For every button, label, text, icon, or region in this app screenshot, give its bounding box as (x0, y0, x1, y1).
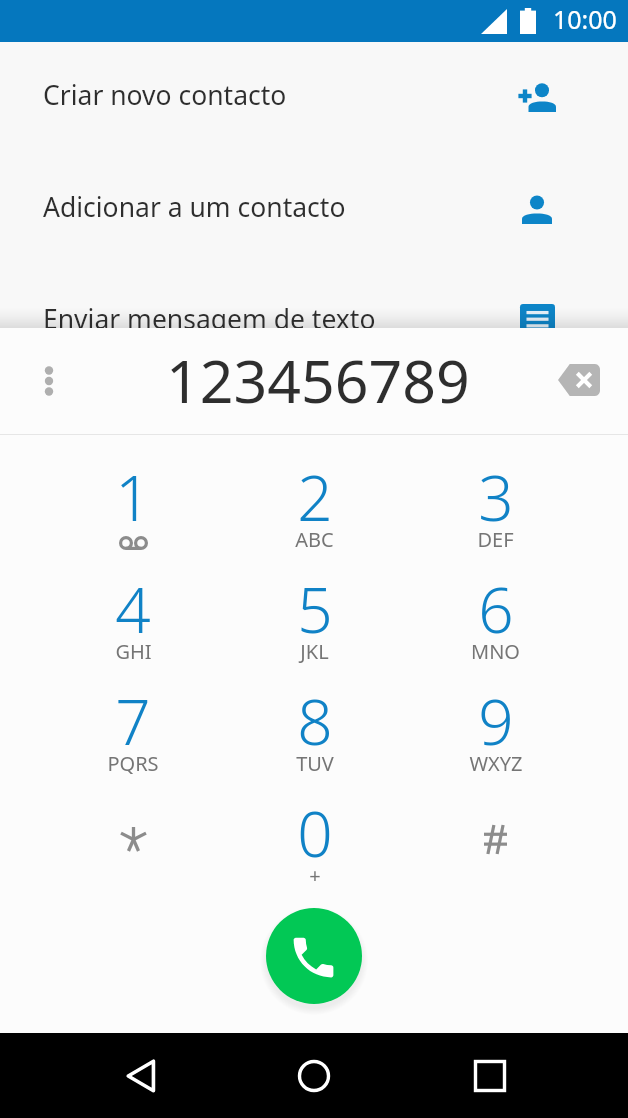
button[interactable] (42, 791, 224, 903)
staticText: 6 (478, 567, 514, 651)
staticText: 2 (297, 455, 333, 539)
staticText: 3 (478, 455, 514, 539)
button[interactable] (405, 791, 586, 903)
staticText: Criar novo contacto (43, 77, 287, 113)
staticText: 4 (115, 567, 151, 651)
staticText: Enviar mensagem de texto (43, 301, 376, 337)
staticText: 0 (297, 791, 333, 875)
staticText: 7 (115, 679, 151, 763)
button[interactable]: Recents (450, 1033, 530, 1118)
staticText: PQRS (107, 750, 159, 777)
button[interactable]: Home (274, 1033, 354, 1118)
button[interactable]: 1 (42, 455, 224, 567)
button[interactable]: Back (103, 1033, 183, 1118)
button[interactable]: Enviar mensagem de texto (0, 263, 628, 375)
staticText: ABC (295, 526, 334, 553)
staticText: 5 (297, 567, 333, 651)
staticText: 10:00 (553, 2, 617, 36)
button[interactable]: Adicionar a um contacto (0, 151, 628, 263)
staticText: WXYZ (469, 750, 523, 777)
staticText: 1 (115, 455, 151, 539)
button[interactable]: 2 (224, 455, 405, 567)
button[interactable]: 7 (42, 679, 224, 791)
staticText: DEF (477, 526, 514, 553)
button[interactable]: 6 (405, 567, 586, 679)
button[interactable]: Call (266, 908, 362, 1004)
button[interactable]: 5 (224, 567, 405, 679)
staticText: Adicionar a um contacto (43, 189, 346, 225)
staticText: GHI (115, 638, 152, 665)
staticText: TUV (296, 750, 334, 777)
staticText: + (309, 862, 321, 889)
button[interactable]: 8 (224, 679, 405, 791)
button[interactable]: Criar novo contacto (0, 39, 628, 151)
staticText: 123456789 (166, 340, 470, 420)
button[interactable]: 9 (405, 679, 586, 791)
staticText: 9 (478, 679, 514, 763)
staticText: JKL (300, 638, 329, 665)
button[interactable]: 3 (405, 455, 586, 567)
staticText: 8 (297, 679, 333, 763)
button[interactable]: 0 (224, 791, 405, 903)
staticText: MNO (471, 638, 520, 665)
button[interactable]: More options (25, 357, 73, 405)
button[interactable]: Backspace (548, 354, 610, 406)
button[interactable]: 4 (42, 567, 224, 679)
